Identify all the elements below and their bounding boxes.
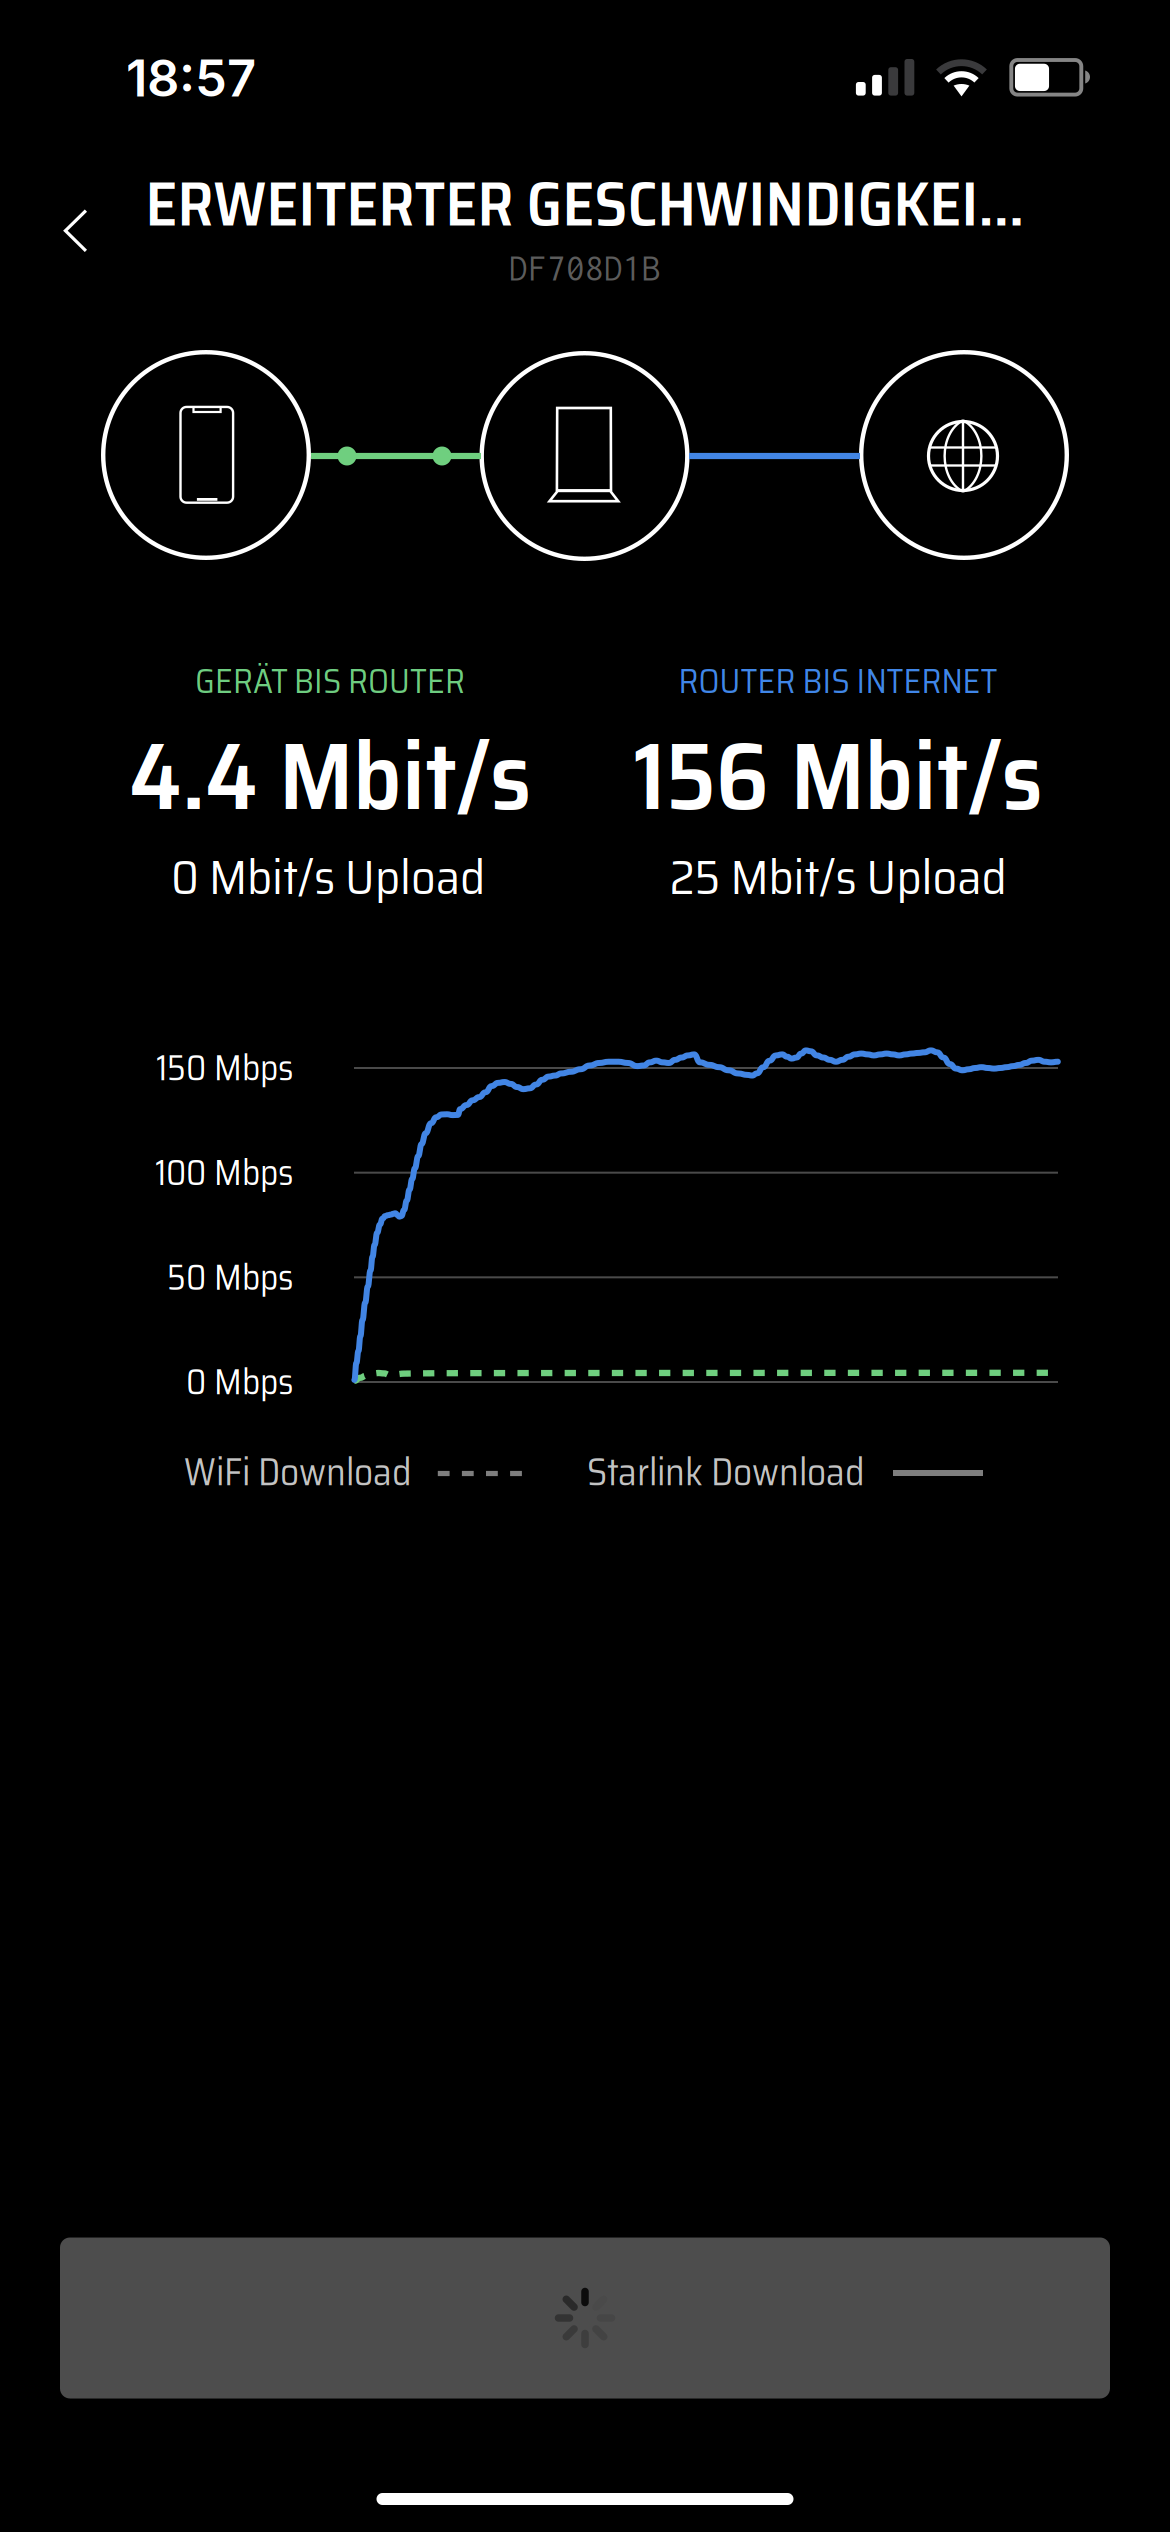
staticText: 4.4 Mbit/s bbox=[129, 701, 531, 851]
staticText: Starlink Download bbox=[587, 1442, 865, 1502]
button[interactable]: Back bbox=[36, 186, 126, 276]
staticText: DF708D1B bbox=[509, 248, 661, 288]
staticText: 0 Mbit/s Upload bbox=[171, 839, 485, 915]
staticText: 25 Mbit/s Upload bbox=[669, 839, 1006, 915]
staticText: GERÄT BIS ROUTER bbox=[195, 654, 465, 708]
staticText: WiFi Download bbox=[184, 1442, 412, 1502]
staticText: 0 Mbps bbox=[186, 1354, 293, 1410]
staticText: 18:57 bbox=[126, 47, 256, 109]
staticText: 100 Mbps bbox=[155, 1145, 293, 1201]
staticText: ERWEITERTER GESCHWINDIGKEI… bbox=[145, 155, 1024, 253]
staticText: 156 Mbit/s bbox=[633, 701, 1042, 851]
staticText: 150 Mbps bbox=[156, 1040, 293, 1096]
staticText: ROUTER BIS INTERNET bbox=[678, 654, 997, 708]
staticText: 50 Mbps bbox=[167, 1249, 293, 1305]
